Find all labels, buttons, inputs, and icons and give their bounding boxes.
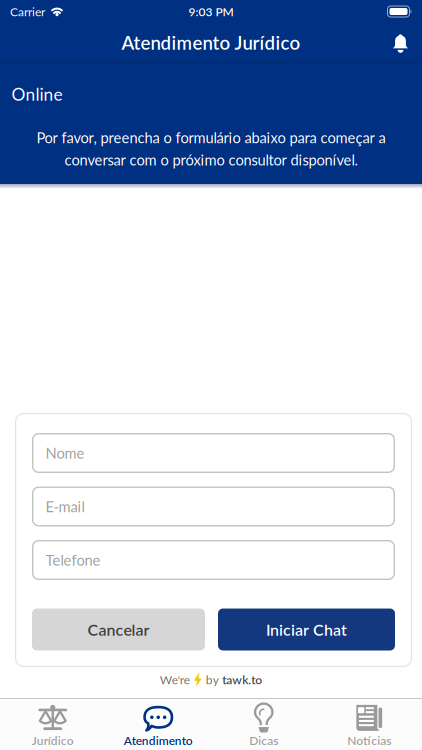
staticText: E-mail xyxy=(45,498,84,515)
staticText: Nome xyxy=(45,444,84,462)
button[interactable]: Cancelar xyxy=(32,608,205,650)
staticText: conversar com o próximo consultor dispon… xyxy=(64,151,357,168)
staticText: Jurídico xyxy=(32,733,74,747)
staticText: Dicas xyxy=(249,733,278,747)
staticText: We're xyxy=(160,672,190,686)
staticText: Notícias xyxy=(347,733,391,747)
staticText: Atendimento Jurídico xyxy=(121,32,300,53)
staticText: Online xyxy=(11,84,62,104)
button[interactable]: We're powered by tawk.to xyxy=(160,672,262,687)
button[interactable]: Notifications xyxy=(392,33,422,53)
button[interactable]: Telefone xyxy=(32,540,395,580)
staticText: Por favor, preencha o formulário abaixo … xyxy=(36,129,385,146)
staticText: tawk.to xyxy=(222,672,262,686)
button[interactable]: E-mail xyxy=(32,486,395,526)
button[interactable]: Dicas xyxy=(211,701,316,747)
button[interactable]: Atendimento xyxy=(105,701,211,747)
button[interactable]: Notícias xyxy=(316,701,422,747)
button[interactable]: Nome xyxy=(32,433,395,473)
staticText: Cancelar xyxy=(87,620,149,639)
staticText: Iniciar Chat xyxy=(266,620,347,639)
button[interactable]: Iniciar Chat xyxy=(218,608,395,650)
button[interactable]: Jurídico xyxy=(0,701,105,747)
staticText: Telefone xyxy=(45,551,100,569)
staticText: 9:03 PM xyxy=(188,4,233,18)
staticText: Atendimento xyxy=(124,733,193,747)
staticText: Carrier xyxy=(10,4,45,18)
staticText: by xyxy=(206,672,219,686)
